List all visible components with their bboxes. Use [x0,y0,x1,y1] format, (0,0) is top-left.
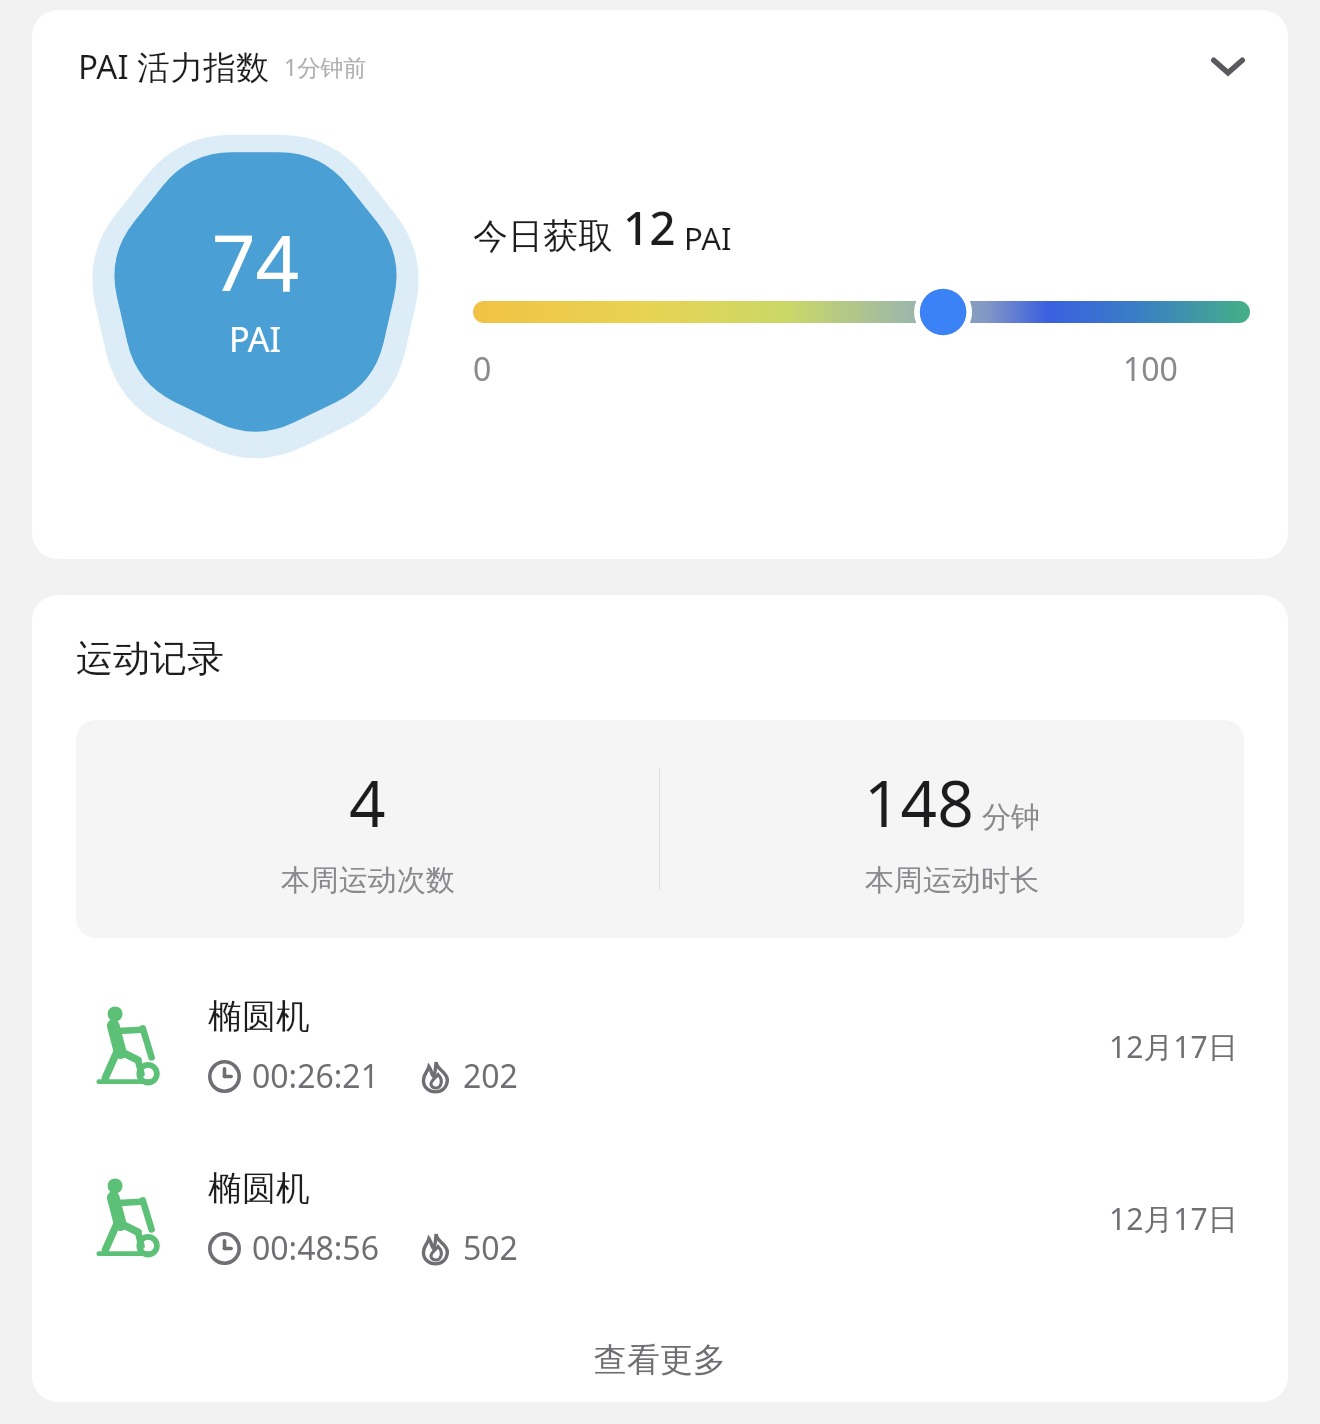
staticText: 502 [463,1226,518,1270]
button[interactable]: 4 [76,720,1244,938]
staticText: 202 [463,1054,518,1098]
staticText: 100 [1123,347,1178,391]
staticText: 查看更多 [594,1339,726,1381]
staticText: 12月17日 [1109,1026,1238,1067]
staticText: 148 [864,759,974,846]
staticText: 00:48:56 [252,1226,379,1270]
staticText: 4 [349,759,386,846]
staticText: PAI 活力指数 [78,44,270,89]
staticText: PAI [229,316,282,362]
staticText: PAI [676,217,732,259]
staticText: 运动记录 [76,635,224,682]
staticText: 00:26:21 [252,1054,379,1098]
staticText: 74 [212,210,299,314]
staticText: 12 [623,196,676,259]
button[interactable]: Collapse [1200,38,1256,94]
staticText: 今日获取 [473,211,623,259]
staticText: 分钟 [982,799,1040,836]
staticText: 12月17日 [1109,1198,1238,1239]
staticText: 本周运动次数 [281,862,455,899]
button[interactable]: 椭圆机 [76,1132,1244,1304]
staticText: 本周运动时长 [865,862,1039,899]
staticText: 1分钟前 [284,51,367,82]
staticText: 0 [473,347,492,391]
staticText: 椭圆机 [208,1167,310,1210]
staticText: 椭圆机 [208,995,310,1038]
button[interactable]: 椭圆机 [76,960,1244,1132]
button[interactable]: 查看更多 [76,1318,1244,1402]
